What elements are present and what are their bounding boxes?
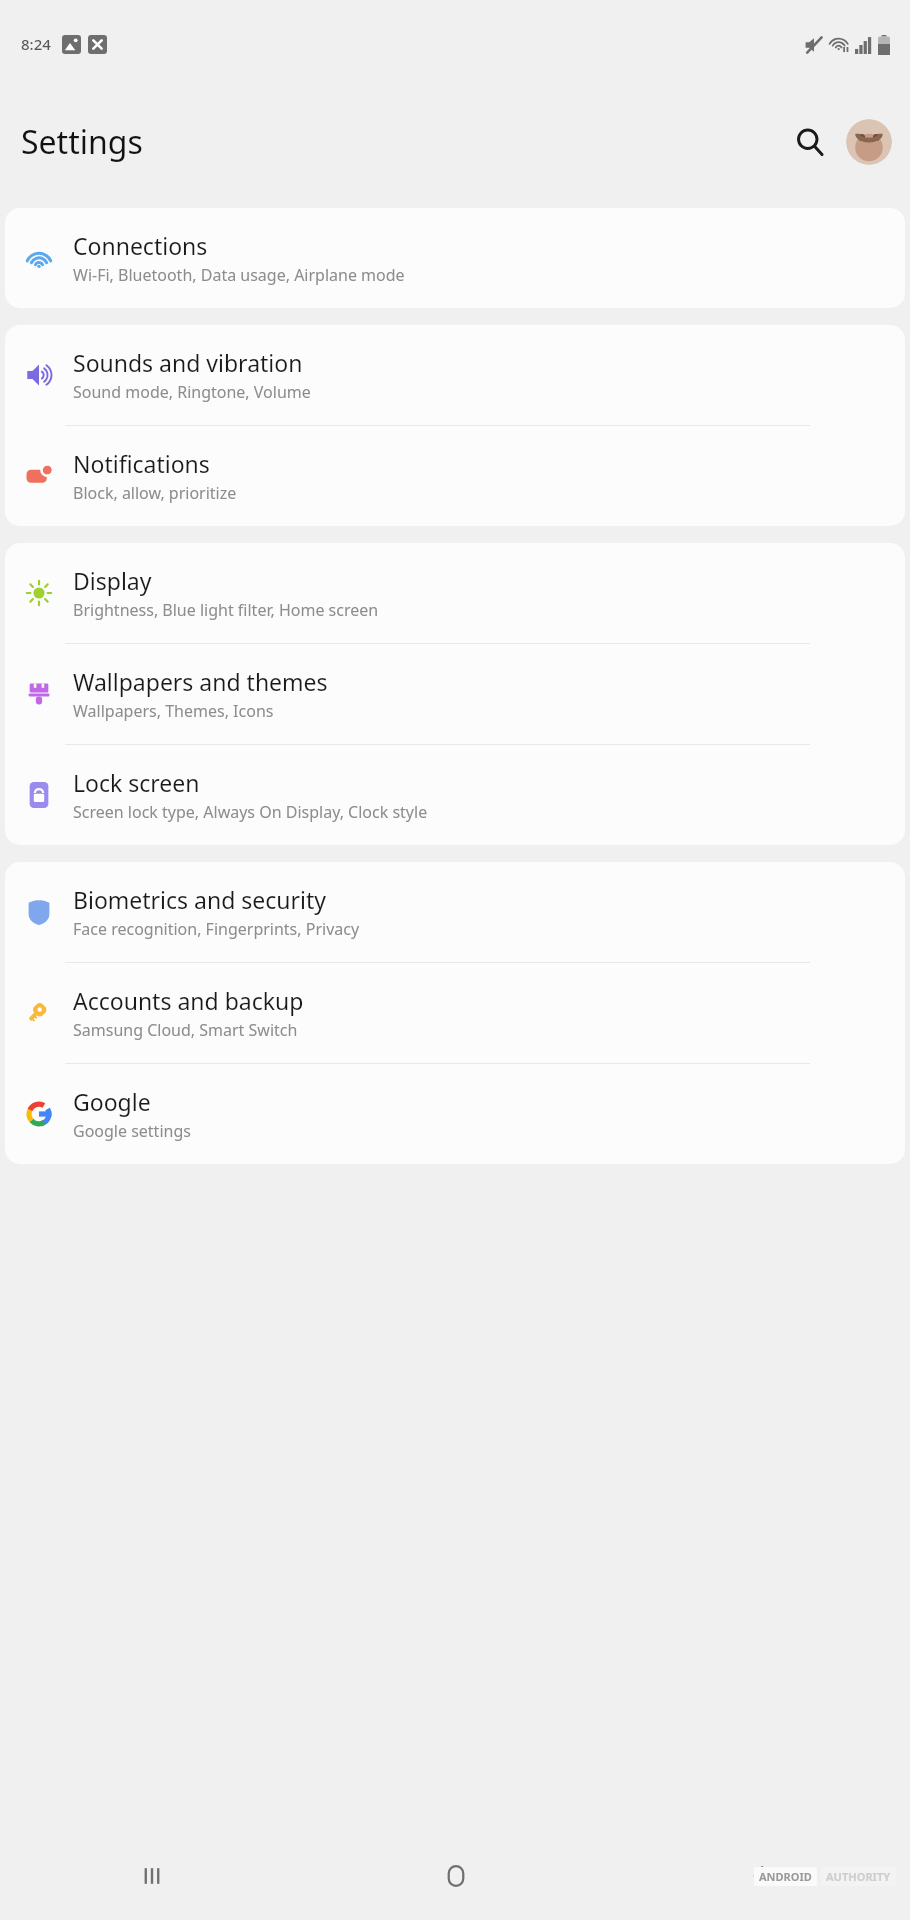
button[interactable]: Notifications [5,426,905,526]
staticText: Google settings [73,1120,191,1142]
staticText: 8:24 [21,34,51,54]
staticText: Wallpapers and themes [73,666,328,697]
button[interactable]: Recent apps [0,1832,304,1920]
button[interactable]: Account profile [846,119,892,165]
staticText: Sound mode, Ringtone, Volume [73,381,311,403]
button[interactable]: Lock screen [5,745,905,845]
staticText: AUTHORITY [826,1869,891,1884]
staticText: Face recognition, Fingerprints, Privacy [73,918,360,940]
button[interactable]: Back [607,1832,910,1920]
staticText: Google [73,1086,151,1117]
button[interactable]: Wallpapers and themes [5,644,905,744]
staticText: Sounds and vibration [73,347,303,378]
button[interactable]: Search [784,116,836,168]
button[interactable]: Google [5,1064,905,1164]
staticText: Samsung Cloud, Smart Switch [73,1019,298,1041]
button[interactable]: Sounds and vibration [5,325,905,425]
staticText: Wallpapers, Themes, Icons [73,700,274,722]
staticText: Connections [73,230,208,261]
staticText: Lock screen [73,767,200,798]
staticText: Settings [21,120,143,164]
staticText: Biometrics and security [73,884,327,915]
staticText: Wi-Fi, Bluetooth, Data usage, Airplane m… [73,264,405,286]
button[interactable]: Home [304,1832,607,1920]
button[interactable]: Biometrics and security [5,862,905,962]
button[interactable]: Accounts and backup [5,963,905,1063]
button[interactable]: Connections [5,208,905,308]
button[interactable]: Display [5,543,905,643]
staticText: Screen lock type, Always On Display, Clo… [73,801,428,823]
staticText: Block, allow, prioritize [73,482,237,504]
staticText: Display [73,565,152,596]
staticText: Accounts and backup [73,985,304,1016]
staticText: Notifications [73,448,210,479]
staticText: Brightness, Blue light filter, Home scre… [73,599,379,621]
staticText: ANDROID [759,1869,812,1884]
